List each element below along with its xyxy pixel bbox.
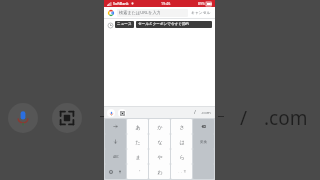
button[interactable]: Scan code <box>52 103 82 133</box>
button[interactable]: か <box>149 119 170 134</box>
button[interactable]: あ <box>127 119 148 134</box>
button[interactable]: は <box>171 134 192 149</box>
button[interactable]: た <box>127 134 148 149</box>
button[interactable]: 検索またはURLを入力 <box>117 9 188 17</box>
button[interactable]: Scan <box>118 109 126 117</box>
button[interactable] <box>193 119 214 134</box>
staticText: キャンセル <box>191 10 211 15</box>
button[interactable]: .com <box>200 110 212 116</box>
staticText: ゛ <box>135 169 141 175</box>
button[interactable]: Voice search <box>8 103 38 133</box>
button[interactable]: 、。?! <box>171 164 192 179</box>
button[interactable]: キャンセル <box>190 10 212 15</box>
staticText: わ <box>157 169 163 175</box>
staticText: .com <box>264 105 308 131</box>
button[interactable]: さ <box>171 119 192 134</box>
button[interactable]: History <box>107 22 113 28</box>
button[interactable]: ま <box>127 149 148 164</box>
button[interactable]: Google <box>107 9 114 16</box>
staticText: セールとクーポンで今すぐ節約 <box>138 22 190 27</box>
button[interactable]: な <box>149 134 170 149</box>
staticText: ま <box>135 154 141 160</box>
staticText: や <box>157 154 163 160</box>
button[interactable]: ABC <box>105 149 126 164</box>
staticText: SoftBank <box>113 1 129 6</box>
staticText: ら <box>179 154 185 160</box>
staticText: 変換 <box>200 140 207 144</box>
button[interactable]: わ <box>149 164 170 179</box>
staticText: 19:46 <box>161 1 171 6</box>
button[interactable] <box>105 134 126 149</box>
staticText: ABC <box>113 155 119 159</box>
staticText: は <box>179 139 185 145</box>
staticText: か <box>157 124 163 130</box>
button[interactable]: Keyboard settings <box>105 164 126 179</box>
staticText: た <box>135 139 141 145</box>
staticText: あ <box>135 124 141 130</box>
staticText: 89% <box>198 1 205 6</box>
staticText: な <box>157 139 163 145</box>
staticText: ニュース <box>117 22 132 27</box>
button[interactable]: / <box>192 109 198 116</box>
staticText: / <box>240 105 248 131</box>
staticText: 、。?! <box>178 170 186 174</box>
button[interactable] <box>105 119 126 134</box>
button[interactable]: ニュース <box>115 21 134 28</box>
staticText: 検索またはURLを入力 <box>119 10 161 16</box>
button[interactable]: セールとクーポンで今すぐ節約 <box>136 21 212 28</box>
button[interactable]: ら <box>171 149 192 164</box>
button[interactable]: Voice input <box>107 109 115 117</box>
button[interactable]: 変換 <box>193 134 214 149</box>
staticText: さ <box>179 124 185 130</box>
button[interactable]: や <box>149 149 170 164</box>
